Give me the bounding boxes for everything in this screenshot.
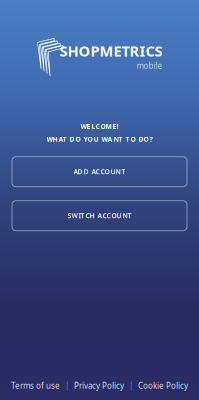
staticText: WE LC OM E! — [80, 122, 118, 131]
staticText: Terms of use — [11, 380, 60, 391]
staticText: mobile — [136, 60, 162, 71]
button[interactable]: Privacy Policy — [74, 380, 124, 391]
staticText: | — [129, 380, 133, 391]
button[interactable]: Terms of use — [11, 380, 60, 391]
button[interactable]: SW IT CH A CC OU NT — [12, 201, 187, 231]
staticText: WH AT D O YO U WA NT T O DO ? — [46, 135, 152, 144]
staticText: Cookie Policy — [138, 380, 188, 391]
button[interactable]: Cookie Policy — [138, 380, 188, 391]
staticText: SW IT CH A CC OU NT — [67, 211, 131, 220]
staticText: SHOPMETRICS — [59, 41, 162, 60]
staticText: | — [65, 380, 69, 391]
button[interactable]: AD D AC CO UN T — [12, 157, 187, 187]
staticText: Privacy Policy — [74, 380, 124, 391]
staticText: AD D AC CO UN T — [73, 167, 125, 176]
